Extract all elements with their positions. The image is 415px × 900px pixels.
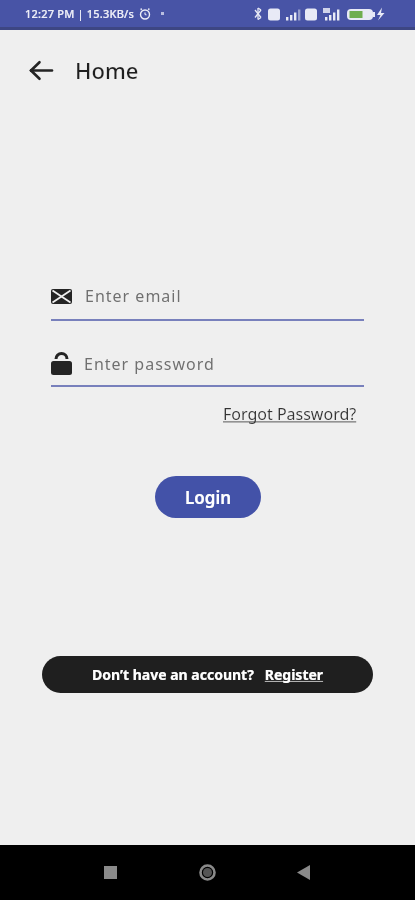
staticText: Enter password (84, 353, 215, 375)
staticText: Login (185, 486, 232, 509)
button[interactable]: Login (155, 476, 261, 518)
button[interactable] (199, 864, 216, 881)
button[interactable] (297, 865, 310, 880)
button[interactable]: Don’t have an account? Register (42, 656, 373, 693)
button[interactable]: Forgot Password? (223, 403, 357, 425)
staticText: Enter email (85, 285, 182, 307)
staticText: Don’t have an account? Register (92, 665, 324, 684)
button[interactable] (30, 48, 64, 92)
staticText: 12:27 PM | 15.3KB/s (25, 6, 135, 21)
staticText: Home (75, 55, 139, 85)
